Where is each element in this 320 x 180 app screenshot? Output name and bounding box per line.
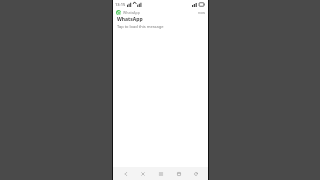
staticText: WhatsApp [123, 10, 140, 15]
button[interactable]: Back [118, 167, 133, 180]
staticText: Tap to load this message [117, 24, 164, 29]
staticText: now [198, 10, 205, 15]
button[interactable]: Tabs [171, 167, 186, 180]
button[interactable]: WhatsApp [113, 9, 208, 32]
button[interactable]: Refresh [188, 167, 203, 180]
button[interactable]: Menu [153, 167, 168, 180]
staticText: WhatsApp [117, 16, 143, 23]
button[interactable]: Close [135, 167, 150, 180]
staticText: 13:15 [115, 2, 126, 7]
